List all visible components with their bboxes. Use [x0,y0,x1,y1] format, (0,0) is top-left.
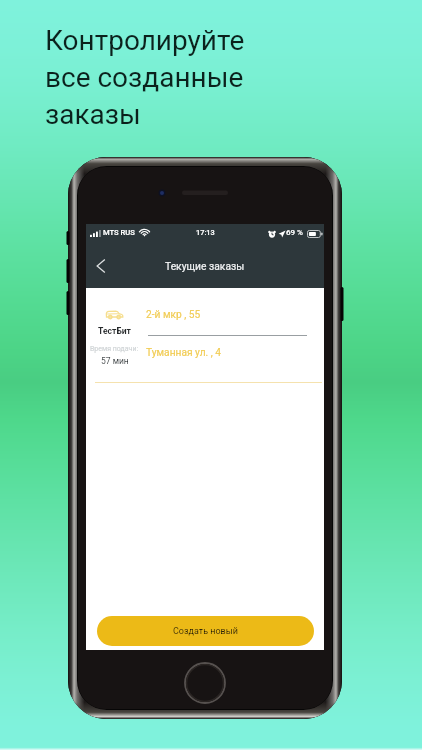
staticText: Создать новый [173,626,238,637]
staticText: Туманная ул. , 4 [146,347,222,359]
staticText: Контролируйте все созданные заказы [45,24,245,131]
staticText: MTS RUS [103,228,135,237]
staticText: 57 мин [101,356,129,366]
staticText: 2-й мкр , 55 [146,309,201,321]
staticText: 69 % [286,228,303,237]
button[interactable]: Создать новый [97,616,314,646]
staticText: ТестБит [98,326,131,336]
staticText: Время подачи: [90,345,139,353]
staticText: Текущие заказы [165,260,245,272]
button[interactable]: ТестБит [86,288,324,384]
button[interactable]: Назад [86,249,116,283]
staticText: 17:13 [196,228,215,237]
